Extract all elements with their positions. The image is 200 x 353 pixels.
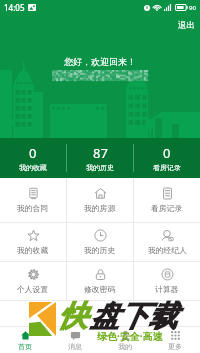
staticText: 修改密码 bbox=[84, 284, 116, 294]
staticText: 看房记录 bbox=[151, 203, 183, 213]
staticText: 14:05 bbox=[4, 2, 25, 13]
button[interactable]: 我的 bbox=[100, 327, 150, 353]
button[interactable]: 我的收藏 bbox=[0, 223, 66, 261]
staticText: 0 bbox=[163, 144, 171, 162]
staticText: 个人设置 bbox=[17, 284, 49, 294]
button[interactable]: 我的历史 bbox=[67, 223, 133, 261]
button[interactable]: 看房记录 bbox=[134, 178, 200, 222]
staticText: 90 bbox=[189, 4, 196, 12]
staticText: 首页 bbox=[18, 342, 32, 351]
button[interactable]: 计算器 bbox=[134, 262, 200, 300]
staticText: 我的收藏 bbox=[19, 163, 47, 172]
staticText: 0 bbox=[29, 144, 37, 162]
staticText: 快 bbox=[58, 298, 87, 335]
button[interactable]: 退出 bbox=[175, 19, 198, 32]
button[interactable]: 首页 bbox=[0, 327, 50, 353]
staticText: 退出 bbox=[178, 20, 195, 31]
button[interactable]: 0 bbox=[0, 138, 66, 178]
staticText: 更多 bbox=[168, 342, 182, 351]
button[interactable]: 87 bbox=[67, 138, 133, 178]
staticText: 我的收藏 bbox=[17, 245, 49, 255]
staticText: 盘下载 bbox=[90, 298, 177, 335]
button[interactable]: 我的合同 bbox=[0, 178, 66, 222]
button[interactable]: 个人设置 bbox=[0, 262, 66, 300]
staticText: 看房记录 bbox=[153, 163, 181, 172]
staticText: 消息 bbox=[68, 342, 82, 351]
staticText: 您好，欢迎回来！ bbox=[64, 56, 136, 67]
staticText: 87 bbox=[93, 144, 108, 162]
staticText: 我的 bbox=[118, 342, 132, 351]
staticText: 计算器 bbox=[155, 284, 179, 294]
staticText: 绿色·安全·高速 bbox=[97, 329, 163, 343]
button[interactable]: 修改密码 bbox=[67, 262, 133, 300]
button[interactable]: 消息 bbox=[50, 327, 100, 353]
button[interactable]: 更多 bbox=[150, 327, 200, 353]
staticText: 我的历史 bbox=[84, 245, 116, 255]
staticText: 我的房源 bbox=[84, 203, 116, 213]
staticText: 我的历史 bbox=[86, 163, 114, 172]
button[interactable]: 我的房源 bbox=[67, 178, 133, 222]
button[interactable]: 0 bbox=[134, 138, 200, 178]
staticText: 我的经纪人 bbox=[148, 245, 187, 255]
staticText: 我的合同 bbox=[17, 203, 49, 213]
button[interactable]: 我的经纪人 bbox=[134, 223, 200, 261]
